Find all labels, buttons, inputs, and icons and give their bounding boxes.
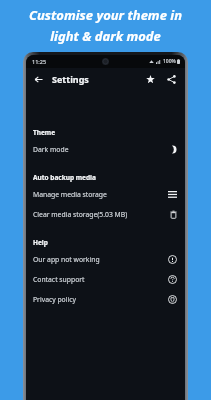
staticText: Manage media storage bbox=[33, 190, 107, 199]
staticText: Settings bbox=[52, 73, 89, 85]
button[interactable]: Clear media storage(5.03 MB) bbox=[26, 204, 185, 224]
staticText: Customise your theme in bbox=[29, 6, 182, 24]
button[interactable]: Back bbox=[30, 71, 46, 87]
staticText: 11:25 bbox=[32, 58, 47, 65]
button[interactable]: Contact support bbox=[26, 269, 185, 289]
button[interactable]: Favourite bbox=[141, 70, 159, 88]
staticText: Help bbox=[33, 238, 48, 247]
button[interactable]: Dark mode bbox=[26, 139, 185, 159]
staticText: light & dark mode bbox=[50, 27, 161, 45]
staticText: Theme bbox=[33, 128, 56, 137]
staticText: Our app not working bbox=[33, 255, 100, 264]
staticText: Contact support bbox=[33, 275, 85, 284]
staticText: Dark mode bbox=[33, 145, 69, 154]
staticText: Privacy policy bbox=[33, 295, 76, 304]
button[interactable]: Share bbox=[162, 70, 180, 88]
staticText: Clear media storage(5.03 MB) bbox=[33, 210, 128, 219]
staticText: Auto backup media bbox=[33, 173, 96, 182]
button[interactable]: Our app not working bbox=[26, 249, 185, 269]
button[interactable]: Privacy policy bbox=[26, 289, 185, 309]
staticText: 100% bbox=[163, 58, 176, 65]
button[interactable]: Manage media storage bbox=[26, 184, 185, 204]
